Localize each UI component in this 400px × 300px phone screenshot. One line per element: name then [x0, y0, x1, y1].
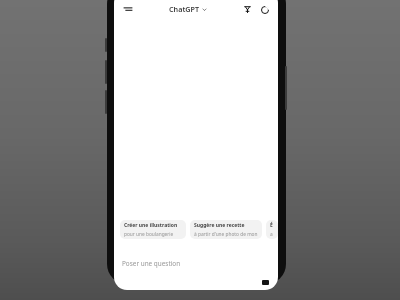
staticText: Créer une illustration: [124, 222, 178, 229]
staticText: ChatGPT: [169, 4, 200, 14]
button[interactable]: Créer une illustration: [120, 220, 186, 239]
button[interactable]: Send message: [262, 280, 269, 285]
button[interactable]: New chat: [258, 3, 271, 16]
button[interactable]: Poser une question: [114, 252, 278, 274]
staticText: Poser une question: [122, 259, 181, 268]
button[interactable]: Menu: [121, 2, 135, 16]
staticText: É: [270, 222, 273, 229]
button[interactable]: É: [266, 220, 278, 239]
staticText: Suggère une recette: [194, 222, 245, 229]
staticText: pour une boulangerie: [124, 231, 174, 237]
button[interactable]: Temporary chat: [241, 3, 254, 16]
button[interactable]: Suggère une recette: [190, 220, 262, 239]
staticText: à partir d'une photo de mon frigo: [194, 231, 258, 237]
button[interactable]: ChatGPT: [167, 3, 209, 15]
staticText: a: [270, 231, 273, 237]
